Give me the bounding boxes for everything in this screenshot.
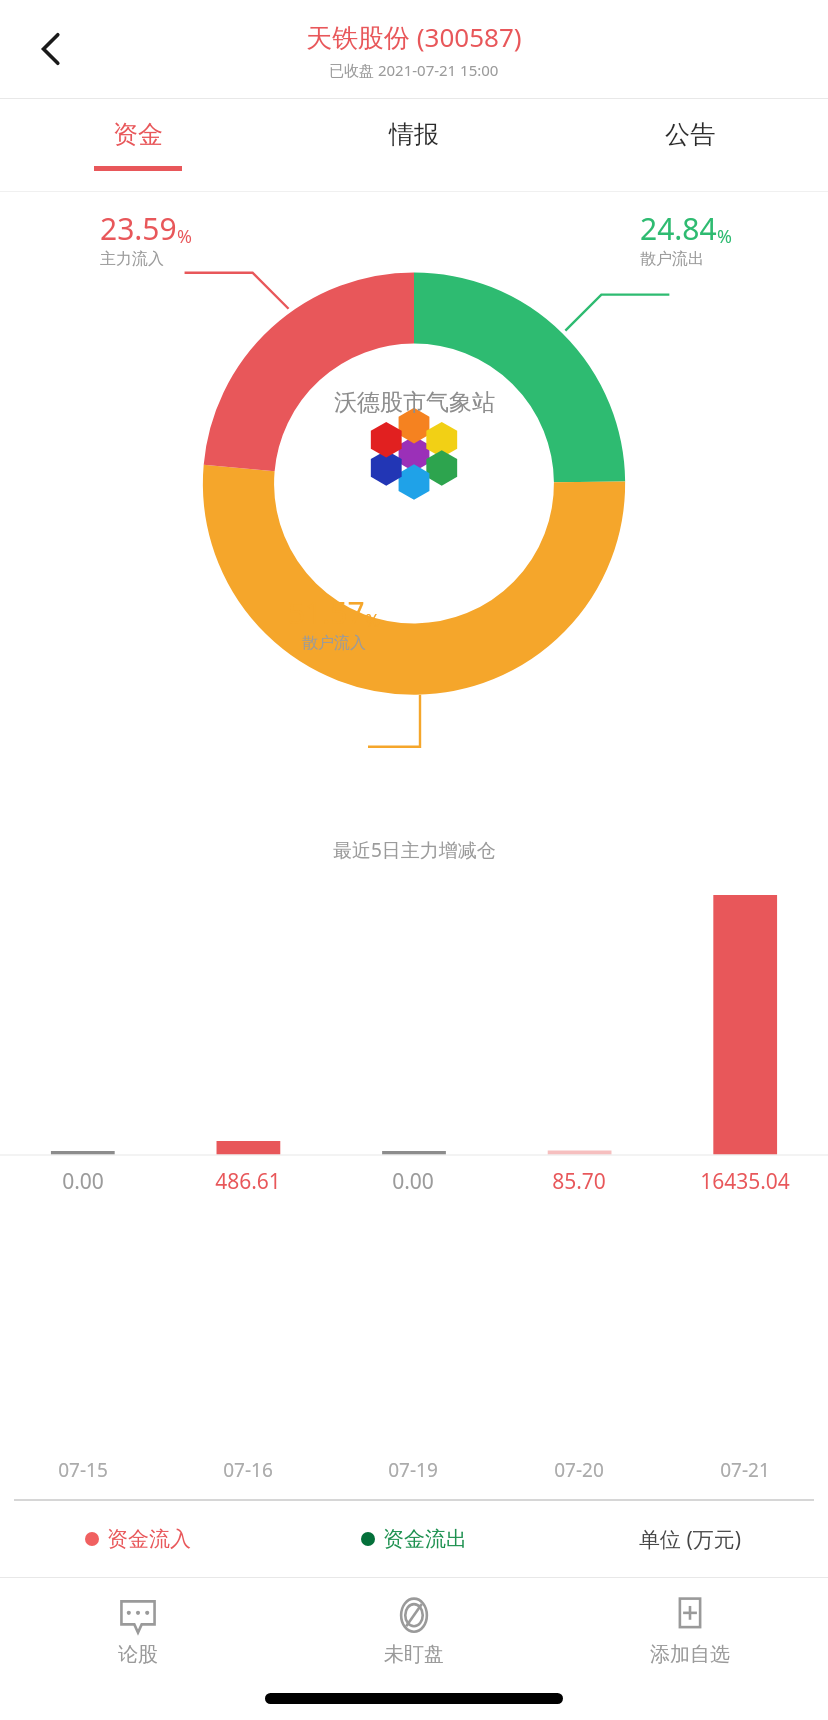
staticText: 24.84 [640, 208, 717, 249]
staticText: 资金 [113, 119, 163, 150]
staticText: 资金流入 [107, 1526, 191, 1552]
staticText: 已收盘 2021-07-21 15:00 [329, 60, 499, 80]
staticText: % [177, 224, 192, 249]
staticText: 0.00 [62, 1167, 104, 1196]
staticText: 资金流出 [383, 1526, 467, 1552]
staticText: 单位 (万元) [639, 1525, 742, 1554]
staticText: 最近5日主力增减仓 [333, 837, 496, 863]
staticText: 沃德股市气象站 [334, 388, 495, 417]
staticText: % [717, 224, 732, 249]
button[interactable]: 论股 [0, 1578, 276, 1720]
button[interactable]: 情报 [276, 99, 552, 191]
staticText: 51.57 [288, 592, 365, 633]
staticText: 公告 [665, 119, 715, 150]
staticText: 486.61 [215, 1167, 281, 1196]
staticText: 16435.04 [700, 1167, 790, 1196]
staticText: 07-15 [58, 1457, 108, 1483]
staticText: 07-21 [720, 1457, 770, 1483]
button[interactable]: 资金 [0, 99, 276, 191]
staticText: 主力流入 [100, 249, 164, 269]
staticText: 07-19 [388, 1457, 438, 1483]
staticText: 07-20 [554, 1457, 604, 1483]
staticText: 散户流入 [302, 633, 366, 653]
staticText: 论股 [118, 1642, 158, 1667]
staticText: 天铁股份 (300587) [306, 19, 522, 55]
staticText: 添加自选 [650, 1642, 730, 1667]
staticText: % [365, 608, 380, 633]
staticText: 散户流出 [640, 249, 704, 269]
button[interactable]: 公告 [552, 99, 828, 191]
staticText: 23.59 [100, 208, 177, 249]
button[interactable]: 未盯盘 [276, 1578, 552, 1720]
staticText: 0.00 [392, 1167, 434, 1196]
staticText: 未盯盘 [384, 1642, 444, 1667]
staticText: 情报 [389, 119, 439, 150]
button[interactable]: 添加自选 [552, 1578, 828, 1720]
staticText: 07-16 [223, 1457, 273, 1483]
button[interactable]: Back [20, 18, 82, 80]
staticText: 85.70 [552, 1167, 606, 1196]
